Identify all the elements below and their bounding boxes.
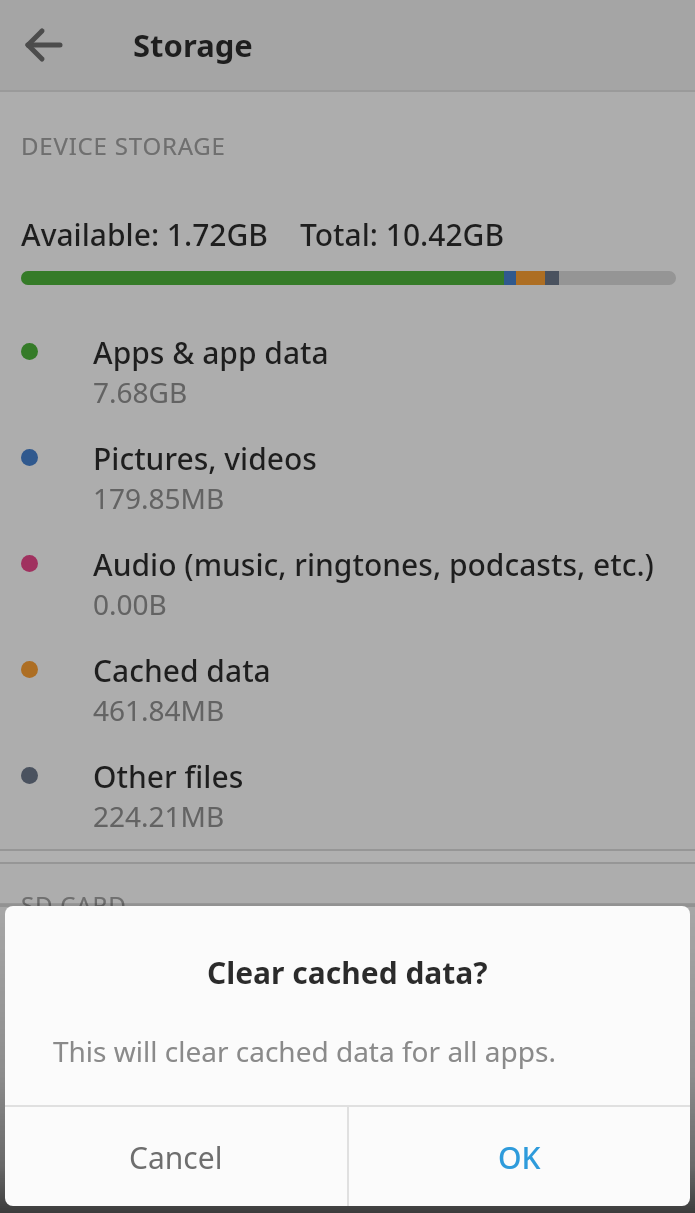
staticText: 179.85MB [93, 479, 225, 517]
staticText: Cancel [129, 1137, 223, 1178]
staticText: 0.00B [93, 585, 167, 623]
staticText: OK [498, 1137, 541, 1178]
staticText: SD CARD [21, 888, 127, 921]
button[interactable]: Audio (music, ringtones, podcasts, etc.) [0, 518, 695, 624]
staticText: Audio (music, ringtones, podcasts, etc.) [93, 544, 654, 585]
staticText: Storage [133, 24, 253, 66]
staticText: This will clear cached data for all apps… [53, 1032, 556, 1070]
staticText: 224.21MB [93, 797, 225, 835]
staticText: DEVICE STORAGE [21, 129, 226, 162]
staticText: Clear cached data? [207, 952, 488, 993]
button[interactable]: Cancel [5, 1109, 347, 1206]
staticText: Pictures, videos [93, 438, 317, 479]
staticText: 461.84MB [93, 691, 225, 729]
button[interactable]: Pictures, videos [0, 412, 695, 518]
button[interactable] [0, 0, 88, 90]
staticText: Available: 1.72GB [21, 214, 268, 255]
button[interactable]: Other files [0, 730, 695, 836]
staticText: Total: 10.42GB [300, 214, 505, 255]
button[interactable]: OK [349, 1109, 690, 1206]
button[interactable]: Apps & app data [0, 306, 695, 412]
staticText: 7.68GB [93, 373, 188, 411]
staticText: Other files [93, 756, 244, 797]
staticText: Cached data [93, 650, 271, 691]
button[interactable]: Cached data [0, 624, 695, 730]
staticText: Apps & app data [93, 332, 329, 373]
